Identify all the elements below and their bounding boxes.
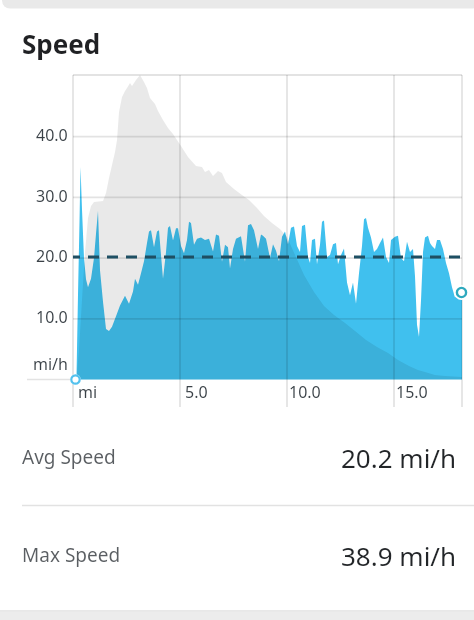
staticText: 38.9 mi/h bbox=[341, 538, 457, 573]
staticText: 15.0 bbox=[396, 381, 428, 403]
staticText: 20.0 bbox=[36, 245, 68, 267]
staticText: mi bbox=[78, 381, 98, 403]
staticText: 5.0 bbox=[185, 381, 208, 403]
staticText: 30.0 bbox=[36, 185, 68, 207]
staticText: Max Speed bbox=[22, 542, 121, 568]
staticText: 10.0 bbox=[289, 381, 321, 403]
staticText: Avg Speed bbox=[22, 444, 116, 470]
staticText: 40.0 bbox=[36, 124, 68, 146]
staticText: mi/h bbox=[33, 353, 68, 375]
button[interactable]: Avg Speed bbox=[22, 431, 457, 483]
staticText: Speed bbox=[22, 26, 101, 61]
staticText: 10.0 bbox=[36, 306, 68, 328]
button[interactable]: Max Speed bbox=[22, 529, 457, 581]
staticText: 20.2 mi/h bbox=[341, 440, 457, 475]
